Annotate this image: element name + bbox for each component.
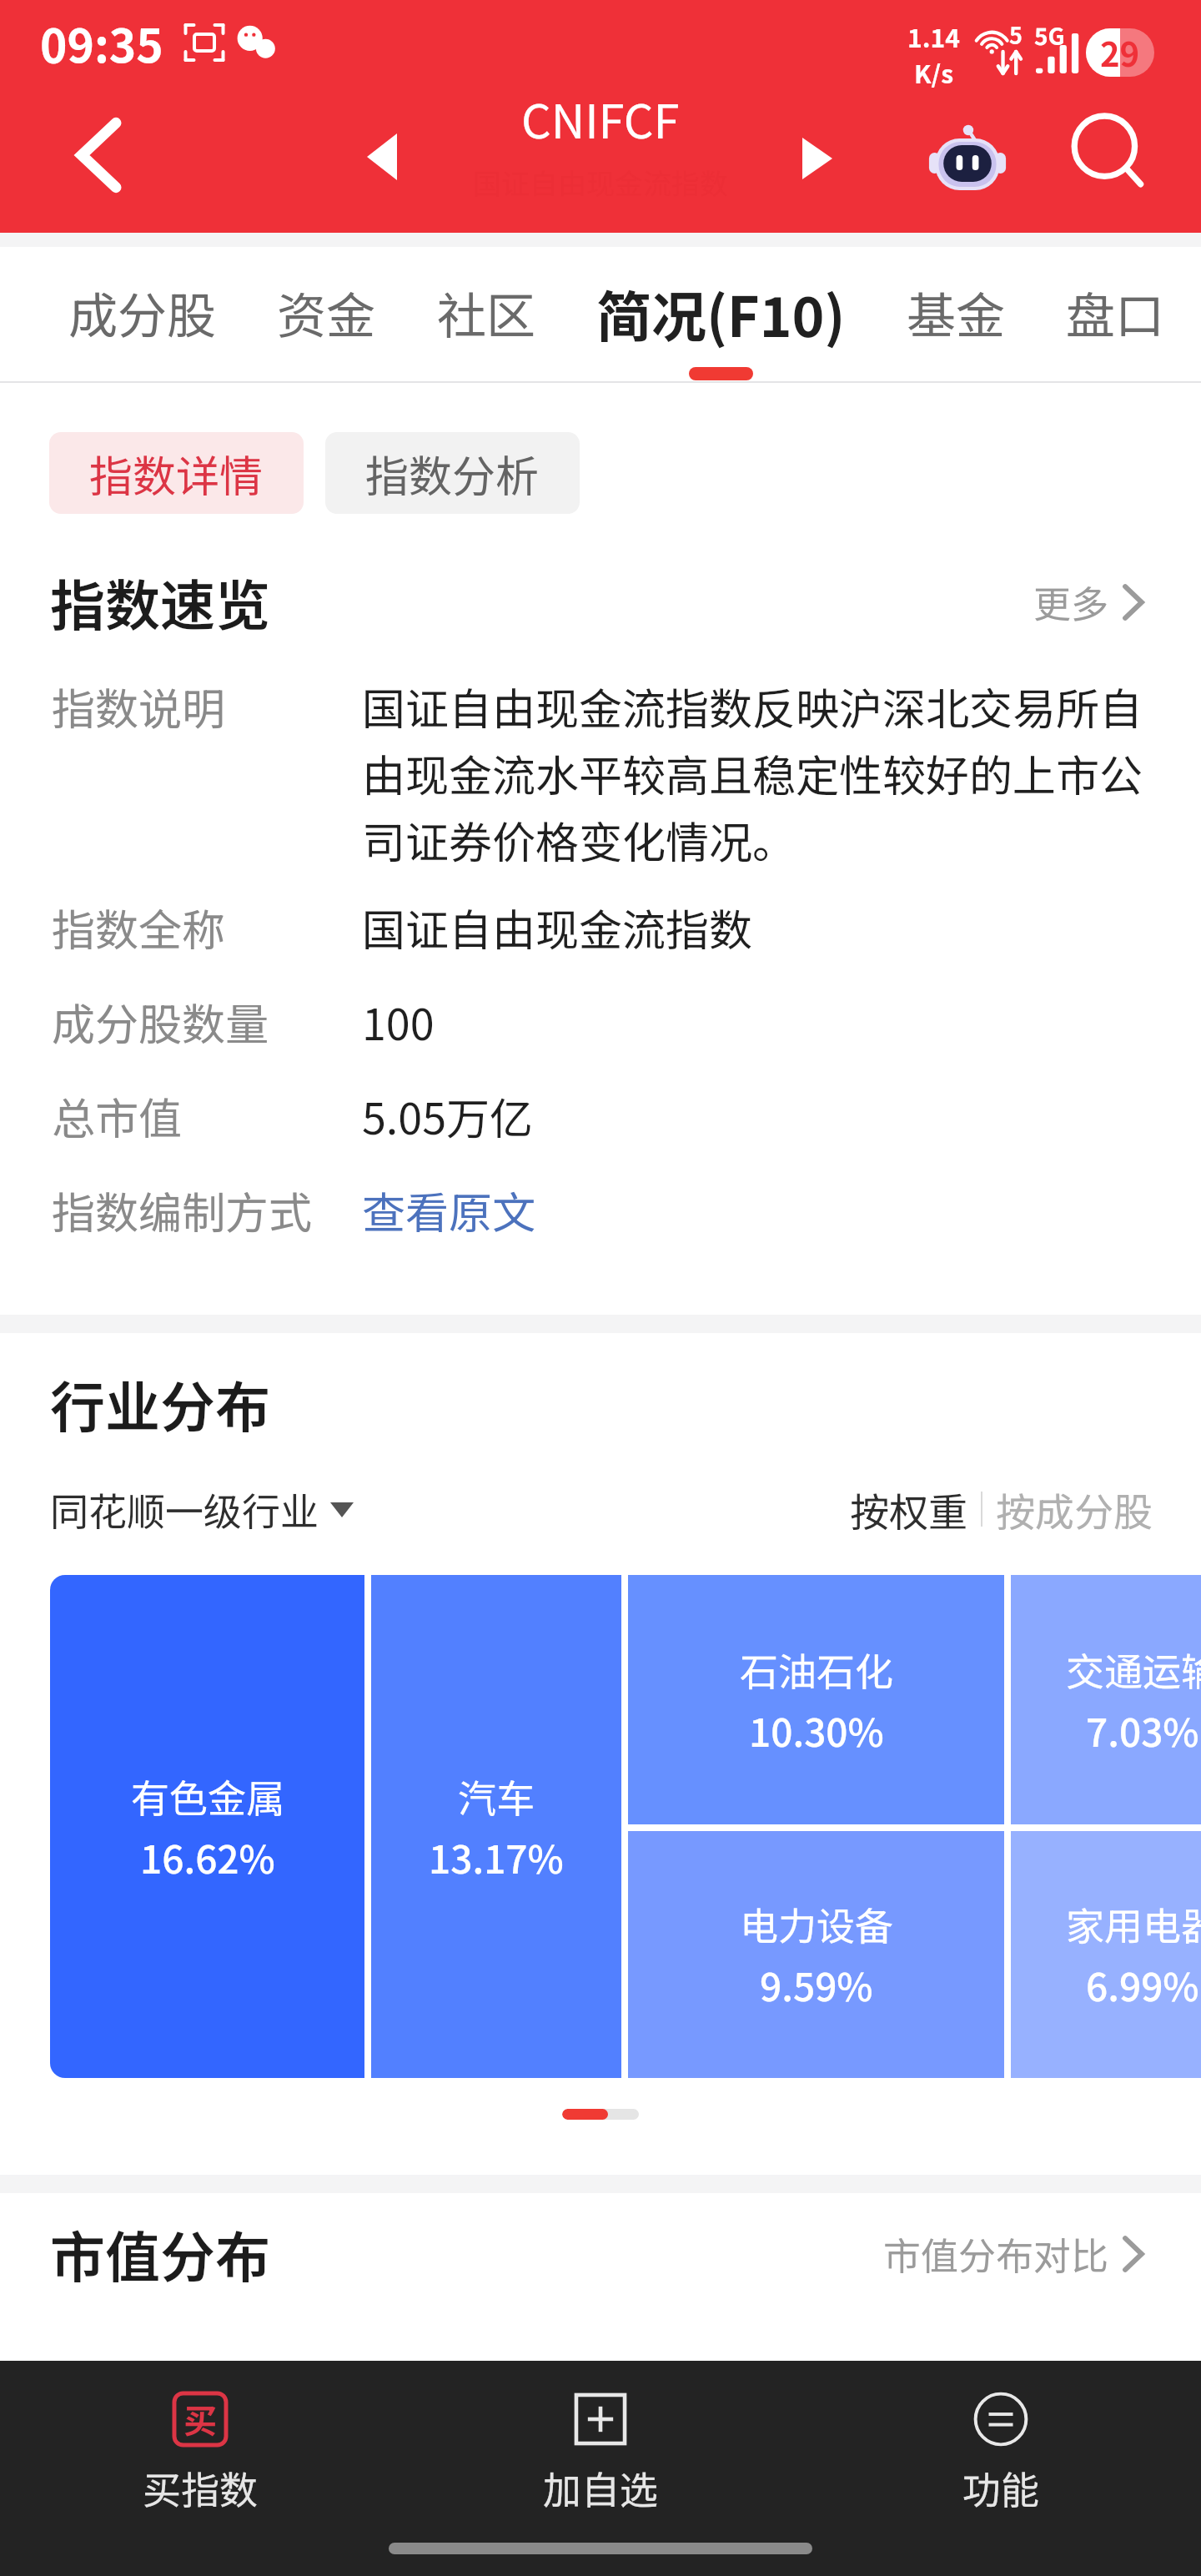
- staticText: 按成分股: [996, 1481, 1153, 1537]
- button[interactable]: 同花顺一级行业: [50, 1482, 354, 1537]
- button[interactable]: 社区: [437, 247, 536, 383]
- button[interactable]: Back: [40, 105, 157, 205]
- staticText: 9.59%: [760, 1957, 873, 2013]
- staticText: 简况(F10): [596, 273, 846, 353]
- staticText: 同花顺一级行业: [50, 1482, 319, 1537]
- staticText: 买指数: [143, 2460, 258, 2516]
- staticText: 6.99%: [1086, 1957, 1199, 2013]
- staticText: 成分股数量: [52, 990, 362, 1053]
- staticText: 有色金属: [131, 1768, 284, 1824]
- staticText: 5G: [1034, 18, 1065, 53]
- button[interactable]: 功能: [801, 2388, 1201, 2519]
- staticText: 石油石化: [740, 1642, 893, 1698]
- staticText: 13.17%: [429, 1829, 564, 1885]
- button[interactable]: 更多: [1033, 575, 1144, 629]
- staticText: 29: [1100, 28, 1140, 77]
- staticText: 指数全称: [52, 896, 362, 958]
- staticText: 国证自由现金流指数反映沪深北交易所自由现金流水平较高且稳定性较好的上市公司证券价…: [362, 675, 1159, 871]
- button[interactable]: 交通运输: [1011, 1575, 1201, 1824]
- button[interactable]: 家用电器: [1011, 1831, 1201, 2078]
- staticText: CNIFCF: [521, 84, 680, 152]
- staticText: 09:35: [40, 9, 163, 76]
- staticText: 成分股: [68, 277, 217, 348]
- staticText: 16.62%: [140, 1829, 275, 1885]
- button[interactable]: 按权重: [850, 1481, 967, 1537]
- button[interactable]: 指数分析: [325, 432, 580, 514]
- staticText: 按权重: [850, 1481, 967, 1537]
- staticText: K/s: [914, 54, 954, 90]
- button[interactable]: 有色金属: [50, 1575, 364, 2078]
- staticText: 汽车: [458, 1768, 535, 1824]
- staticText: 交通运输: [1066, 1642, 1201, 1698]
- staticText: 1.14: [907, 18, 960, 54]
- staticText: 指数详情: [89, 442, 264, 505]
- staticText: 指数编制方式: [52, 1179, 362, 1241]
- staticText: 功能: [962, 2460, 1039, 2516]
- staticText: 国证自由现金流指数: [362, 896, 753, 958]
- staticText: 100: [362, 990, 435, 1053]
- staticText: 社区: [437, 277, 536, 348]
- button[interactable]: Next index: [767, 108, 867, 209]
- button[interactable]: 资金: [277, 247, 376, 383]
- button[interactable]: 加自选: [400, 2388, 801, 2519]
- button[interactable]: 基金: [907, 247, 1006, 383]
- staticText: 指数分析: [365, 442, 540, 505]
- staticText: 5.05万亿: [362, 1084, 534, 1147]
- staticText: 电力设备: [740, 1896, 893, 1952]
- button[interactable]: 盘口: [1066, 247, 1165, 383]
- staticText: 总市值: [52, 1084, 362, 1147]
- staticText: 5: [1009, 18, 1023, 51]
- staticText: 指数速览: [50, 561, 270, 641]
- button[interactable]: 市值分布对比: [883, 2226, 1144, 2281]
- staticText: 家用电器: [1066, 1896, 1201, 1952]
- button[interactable]: Previous index: [332, 107, 432, 207]
- button[interactable]: 石油石化: [628, 1575, 1004, 1824]
- button[interactable]: AI assistant: [909, 108, 1026, 209]
- staticText: 加自选: [543, 2460, 658, 2516]
- staticText: 更多: [1033, 575, 1109, 629]
- staticText: 市值分布对比: [883, 2226, 1109, 2281]
- staticText: 买: [183, 2395, 217, 2443]
- button[interactable]: 电力设备: [628, 1831, 1004, 2078]
- staticText: 市值分布: [50, 2213, 270, 2293]
- button[interactable]: Search: [1051, 105, 1168, 205]
- staticText: 资金: [277, 277, 376, 348]
- button[interactable]: 汽车: [371, 1575, 621, 2078]
- staticText: 行业分布: [50, 1363, 270, 1443]
- button[interactable]: 简况(F10): [596, 247, 846, 383]
- staticText: 指数说明: [52, 675, 362, 737]
- staticText: 查看原文: [362, 1179, 536, 1241]
- staticText: 盘口: [1066, 277, 1165, 348]
- staticText: 10.30%: [749, 1703, 884, 1758]
- staticText: 基金: [907, 277, 1006, 348]
- button[interactable]: 买: [0, 2388, 400, 2519]
- button[interactable]: 按成分股: [996, 1481, 1153, 1537]
- staticText: 7.03%: [1086, 1703, 1199, 1758]
- button[interactable]: 成分股: [68, 247, 217, 383]
- button[interactable]: 指数详情: [49, 432, 304, 514]
